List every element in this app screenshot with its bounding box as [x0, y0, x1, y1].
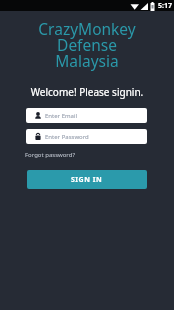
- staticText: Enter Password: [45, 133, 89, 141]
- button[interactable]: Enter Email: [26, 108, 147, 123]
- staticText: Enter Email: [45, 112, 78, 120]
- button[interactable]: Enter Password: [26, 129, 147, 144]
- staticText: CrazyMonkey Defense Malaysia: [0, 18, 174, 71]
- button[interactable]: SIGN IN: [27, 170, 147, 189]
- staticText: 5:17: [158, 1, 172, 11]
- button[interactable]: Forgot password?: [25, 151, 76, 159]
- staticText: SIGN IN: [71, 175, 103, 185]
- staticText: Welcome! Please signin.: [0, 85, 174, 99]
